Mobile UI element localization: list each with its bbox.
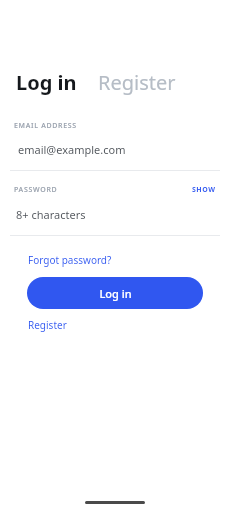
button[interactable]: Log in [15, 66, 78, 99]
button[interactable]: Log in [27, 277, 203, 309]
button[interactable]: Forgot password? [26, 251, 114, 269]
staticText: EMAIL ADDRESS [14, 121, 77, 131]
staticText: email@example.com [18, 142, 126, 157]
staticText: Log in [99, 286, 132, 301]
staticText: 8+ characters [16, 207, 86, 222]
button[interactable]: Register [97, 66, 177, 99]
button[interactable]: EMAIL ADDRESS [0, 121, 230, 171]
button[interactable]: Register [26, 316, 69, 334]
staticText: Forgot password? [28, 253, 112, 267]
staticText: SHOW [192, 185, 216, 195]
staticText: Register [98, 69, 176, 96]
button[interactable]: 8+ characters [0, 207, 230, 222]
staticText: Log in [16, 69, 77, 96]
staticText: PASSWORD [14, 185, 58, 195]
staticText: Register [28, 318, 67, 332]
button[interactable]: SHOW [190, 183, 218, 197]
